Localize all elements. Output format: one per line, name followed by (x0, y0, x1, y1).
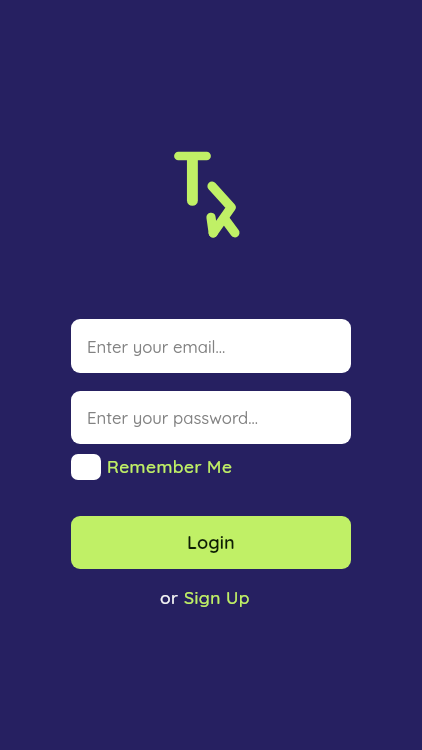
button[interactable]: Enter your email... (71, 319, 351, 373)
other: TX logo (168, 145, 244, 241)
button[interactable]: Remember Me (71, 454, 233, 480)
staticText: or (160, 587, 184, 609)
staticText: Remember Me (107, 456, 233, 478)
staticText: Enter your email... (87, 336, 226, 357)
button[interactable]: Sign Up (184, 587, 250, 609)
staticText: Login (187, 531, 235, 554)
button[interactable]: Enter your password... (71, 391, 351, 444)
staticText: Enter your password... (87, 407, 258, 428)
staticText: Sign Up (184, 587, 250, 609)
button[interactable]: Login (71, 516, 351, 569)
